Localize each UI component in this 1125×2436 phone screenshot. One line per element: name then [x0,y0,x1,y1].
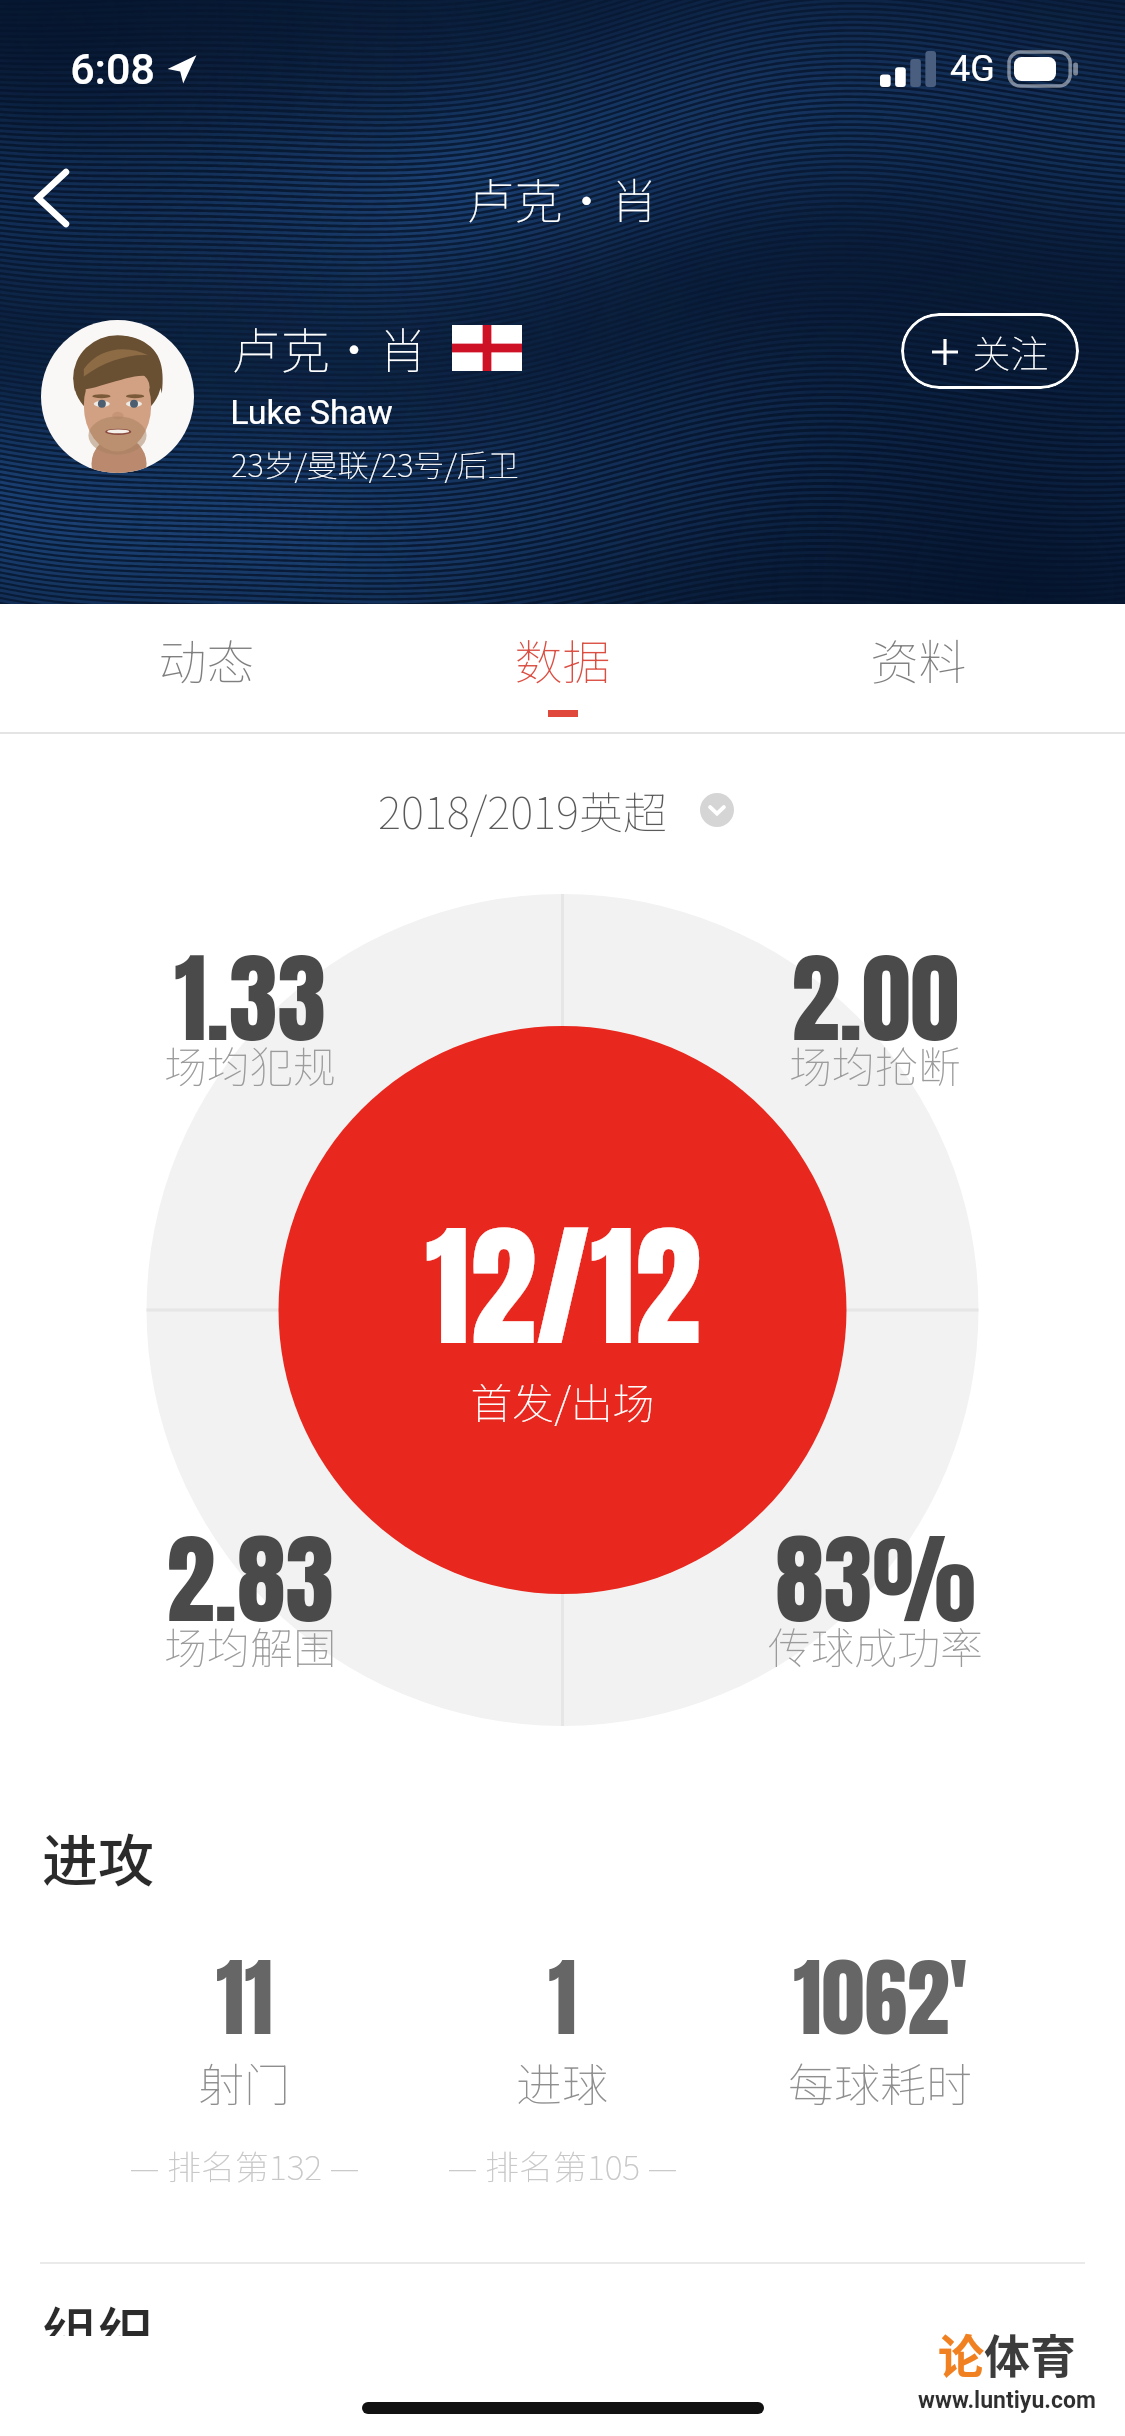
button[interactable]: Back [6,143,98,253]
staticText: 2.83 [166,1506,334,1654]
staticText: 动态 [158,624,255,694]
staticText: 场均犯规 [164,1033,336,1095]
staticText: www.luntiyu.com [918,2387,1096,2414]
staticText: 组织 [42,2289,154,2336]
staticText: 进球 [516,2049,608,2116]
staticText: 体育 [984,2320,1076,2387]
staticText: 卢克·肖 [466,163,659,233]
staticText: 资料 [870,624,967,694]
staticText: 4G [950,48,995,90]
button[interactable]: 动态 [29,604,384,732]
staticText: 23岁/曼联/23号/后卫 [231,441,519,486]
staticText: 关注 [972,324,1049,379]
staticText: 11 [216,1933,273,2062]
staticText: 进攻 [42,1816,154,1897]
button[interactable]: 2018/2019英超 [378,778,734,842]
staticText: 2.00 [791,925,959,1073]
staticText: 1.33 [174,925,326,1073]
staticText: 射门 [198,2049,290,2116]
staticText: 每球耗时 [788,2049,972,2116]
staticText: — 排名第105 — [447,2141,678,2190]
staticText: 1062' [793,1933,968,2062]
staticText: 首发/出场 [470,1370,655,1431]
staticText: 12/12 [425,1185,701,1387]
button[interactable]: 资料 [740,604,1096,732]
staticText: 1 [548,1933,577,2062]
staticText: 83% [775,1506,976,1654]
staticText: 传球成功率 [768,1614,983,1676]
staticText: 卢克·肖 [231,312,428,383]
button[interactable]: 关注 [901,313,1079,389]
staticText: 数据 [514,624,611,694]
staticText: 论 [938,2320,984,2387]
staticText: 6:08 [70,44,155,94]
staticText: — 排名第132 — [129,2141,360,2190]
staticText: 场均抢断 [789,1033,961,1095]
staticText: Luke Shaw [230,392,393,432]
button[interactable]: 数据 [384,604,740,732]
staticText: 2018/2019英超 [378,778,667,842]
staticText: 场均解围 [164,1614,336,1676]
